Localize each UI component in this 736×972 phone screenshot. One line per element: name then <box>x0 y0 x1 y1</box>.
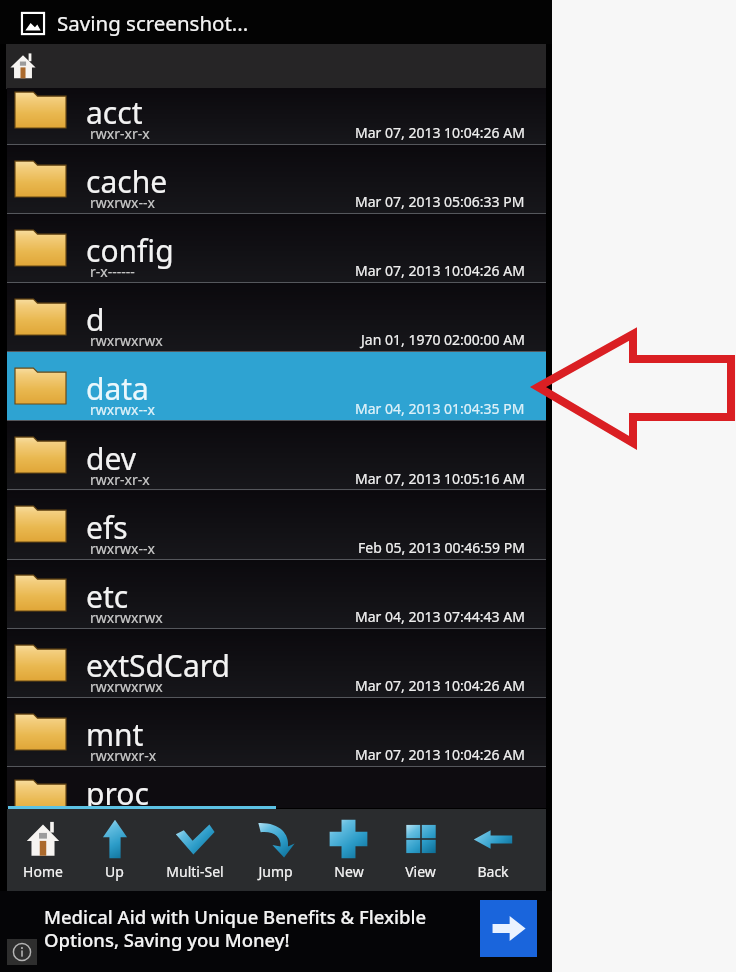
staticText: View <box>405 862 436 881</box>
button[interactable] <box>7 698 546 767</box>
button[interactable] <box>7 352 546 421</box>
staticText: Mar 07, 2013 05:06:33 PM <box>355 192 525 211</box>
button[interactable]: Open advertisement <box>480 900 537 957</box>
staticText: rwxrwxr-x <box>90 746 157 765</box>
staticText: proc <box>86 773 149 814</box>
staticText: Mar 07, 2013 10:04:26 AM <box>355 261 525 280</box>
button[interactable]: View <box>383 809 458 891</box>
staticText: rwxr-xr-x <box>90 124 150 143</box>
button[interactable]: Up <box>77 809 152 891</box>
staticText: Mar 07, 2013 10:04:26 AM <box>355 745 525 764</box>
staticText: Mar 04, 2013 07:44:43 AM <box>355 607 525 626</box>
staticText: dev <box>86 438 137 479</box>
staticText: Jump <box>258 862 293 881</box>
button[interactable]: New <box>311 809 386 891</box>
other: Screenshot <box>21 12 45 35</box>
staticText: Feb 05, 2013 00:46:59 PM <box>358 538 525 557</box>
staticText: config <box>86 230 174 271</box>
button[interactable] <box>7 629 546 698</box>
staticText: rwxr-xr-x <box>90 470 150 489</box>
button[interactable] <box>7 491 546 560</box>
staticText: r-x------ <box>90 262 135 281</box>
staticText: Medical Aid with Unique Benefits & Flexi… <box>44 904 427 952</box>
staticText: Saving screenshot... <box>57 9 249 37</box>
staticText: Up <box>105 862 124 881</box>
staticText: Jan 01, 1970 02:00:00 AM <box>361 330 525 349</box>
staticText: Mar 04, 2013 01:04:35 PM <box>355 399 525 418</box>
button[interactable]: Ad info <box>7 939 37 965</box>
staticText: rwxrwx--x <box>90 193 155 212</box>
button[interactable] <box>7 421 546 490</box>
staticText: d <box>86 299 105 340</box>
staticText: efs <box>86 507 128 548</box>
button[interactable] <box>7 145 546 214</box>
staticText: acct <box>86 92 143 133</box>
staticText: rwxrwx--x <box>90 539 155 558</box>
button[interactable]: Home <box>9 52 37 80</box>
staticText: rwxrwx--x <box>90 400 155 419</box>
staticText: cache <box>86 161 168 202</box>
staticText: Mar 07, 2013 10:04:26 AM <box>355 123 525 142</box>
staticText: extSdCard <box>86 645 230 686</box>
button[interactable] <box>7 88 546 145</box>
button[interactable] <box>7 214 546 283</box>
staticText: Mar 07, 2013 10:05:16 AM <box>355 469 525 488</box>
staticText: Home <box>23 862 63 881</box>
button[interactable]: Multi-Sel <box>157 809 232 891</box>
staticText: data <box>86 368 149 409</box>
staticText: Multi-Sel <box>166 862 224 881</box>
staticText: rwxrwxrwx <box>90 677 163 696</box>
button[interactable]: Jump <box>238 809 313 891</box>
button[interactable]: Back <box>455 809 530 891</box>
staticText: Mar 07, 2013 10:04:26 AM <box>355 676 525 695</box>
staticText: etc <box>86 576 129 617</box>
button[interactable]: Home <box>5 809 80 891</box>
button[interactable] <box>7 560 546 629</box>
staticText: rwxrwxrwx <box>90 331 163 350</box>
staticText: mnt <box>86 714 144 755</box>
staticText: rwxrwxrwx <box>90 608 163 627</box>
staticText: Back <box>477 862 509 881</box>
staticText: New <box>334 862 364 881</box>
button[interactable] <box>7 283 546 352</box>
